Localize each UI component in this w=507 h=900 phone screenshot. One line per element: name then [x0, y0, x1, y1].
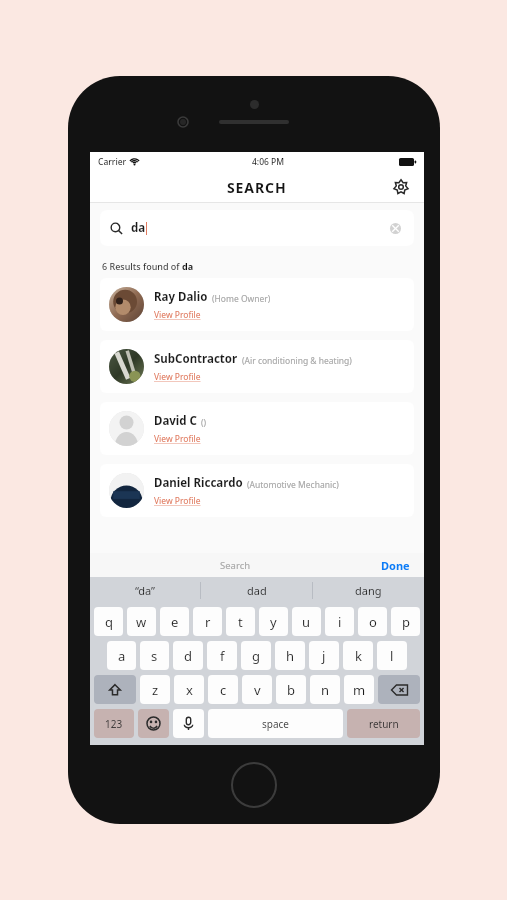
staticText: da — [182, 260, 194, 272]
staticText: return — [369, 717, 399, 731]
staticText: p — [402, 613, 410, 631]
button[interactable]: 123 — [94, 709, 134, 738]
button[interactable]: m — [344, 675, 374, 704]
staticText: (Air conditioning & heating) — [242, 355, 352, 367]
button[interactable]: SubContractor — [100, 340, 414, 393]
button[interactable]: t — [226, 607, 255, 636]
button[interactable]: e — [160, 607, 189, 636]
button[interactable]: return — [347, 709, 420, 738]
staticText: SubContractor — [154, 351, 238, 367]
button[interactable]: “da” — [90, 577, 200, 604]
staticText: d — [184, 647, 192, 665]
staticText: s — [151, 647, 158, 665]
staticText: dang — [355, 583, 382, 598]
staticText: b — [287, 681, 295, 699]
staticText: v — [254, 681, 261, 699]
button[interactable]: k — [343, 641, 373, 670]
staticText: space — [262, 717, 289, 731]
staticText: w — [136, 613, 147, 631]
staticText: m — [353, 681, 366, 699]
staticText: View Profile — [154, 309, 201, 321]
button[interactable]: Clear search — [386, 219, 404, 237]
button[interactable]: View Profile — [154, 433, 201, 445]
button[interactable]: b — [276, 675, 306, 704]
staticText: a — [118, 647, 126, 665]
staticText: j — [322, 647, 326, 665]
button[interactable]: l — [377, 641, 407, 670]
button[interactable]: f — [207, 641, 237, 670]
button[interactable]: w — [127, 607, 156, 636]
button[interactable]: c — [208, 675, 238, 704]
button[interactable]: j — [309, 641, 339, 670]
staticText: t — [238, 613, 243, 631]
staticText: () — [201, 417, 207, 429]
button[interactable]: Dictation — [173, 709, 204, 738]
button[interactable]: n — [310, 675, 340, 704]
button[interactable]: dad — [201, 577, 312, 604]
button[interactable]: Shift — [94, 675, 136, 704]
staticText: 4:06 PM — [252, 156, 285, 168]
staticText: 6 Results found of — [102, 260, 182, 272]
button[interactable]: da — [100, 210, 414, 246]
button[interactable]: u — [292, 607, 321, 636]
button[interactable]: space — [208, 709, 343, 738]
button[interactable]: x — [174, 675, 204, 704]
staticText: h — [286, 647, 295, 665]
button[interactable]: p — [391, 607, 420, 636]
staticText: u — [302, 613, 311, 631]
staticText: Carrier — [98, 156, 127, 168]
staticText: g — [252, 647, 260, 665]
button[interactable]: David C — [100, 402, 414, 455]
staticText: 123 — [105, 717, 123, 731]
staticText: View Profile — [154, 433, 201, 445]
staticText: David C — [154, 413, 197, 429]
staticText: Daniel Riccardo — [154, 475, 243, 491]
button[interactable]: Done — [381, 558, 410, 573]
staticText: Done — [381, 558, 410, 573]
staticText: Search — [220, 559, 251, 572]
staticText: dad — [247, 583, 267, 598]
staticText: o — [369, 613, 377, 631]
button[interactable]: h — [275, 641, 305, 670]
staticText: f — [220, 647, 225, 665]
button[interactable]: z — [140, 675, 170, 704]
staticText: i — [338, 613, 342, 631]
button[interactable]: Emoji — [138, 709, 169, 738]
staticText: View Profile — [154, 371, 201, 383]
staticText: x — [186, 681, 193, 699]
button[interactable]: g — [241, 641, 271, 670]
button[interactable]: Settings — [388, 174, 414, 200]
button[interactable]: View Profile — [154, 495, 201, 507]
button[interactable]: v — [242, 675, 272, 704]
staticText: SEARCH — [227, 178, 287, 197]
button[interactable]: dang — [313, 577, 424, 604]
staticText: (Automotive Mechanic) — [247, 479, 339, 491]
staticText: (Home Owner) — [212, 293, 271, 305]
staticText: View Profile — [154, 495, 201, 507]
button[interactable]: Ray Dalio — [100, 278, 414, 331]
button[interactable]: r — [193, 607, 222, 636]
staticText: da — [131, 220, 146, 236]
staticText: c — [220, 681, 227, 699]
staticText: Ray Dalio — [154, 289, 208, 305]
button[interactable]: i — [325, 607, 354, 636]
staticText: “da” — [135, 583, 156, 598]
staticText: l — [390, 647, 394, 665]
staticText: n — [321, 681, 330, 699]
button[interactable]: a — [107, 641, 136, 670]
staticText: e — [171, 613, 179, 631]
button[interactable]: Backspace — [378, 675, 420, 704]
button[interactable]: View Profile — [154, 371, 201, 383]
button[interactable]: View Profile — [154, 309, 201, 321]
staticText: z — [152, 681, 159, 699]
button[interactable]: s — [140, 641, 169, 670]
button[interactable]: o — [358, 607, 387, 636]
button[interactable]: d — [173, 641, 203, 670]
staticText: k — [355, 647, 362, 665]
button[interactable]: Daniel Riccardo — [100, 464, 414, 517]
staticText: r — [205, 613, 211, 631]
button[interactable]: q — [94, 607, 123, 636]
button[interactable]: y — [259, 607, 288, 636]
staticText: y — [270, 613, 277, 631]
staticText: q — [105, 613, 113, 631]
